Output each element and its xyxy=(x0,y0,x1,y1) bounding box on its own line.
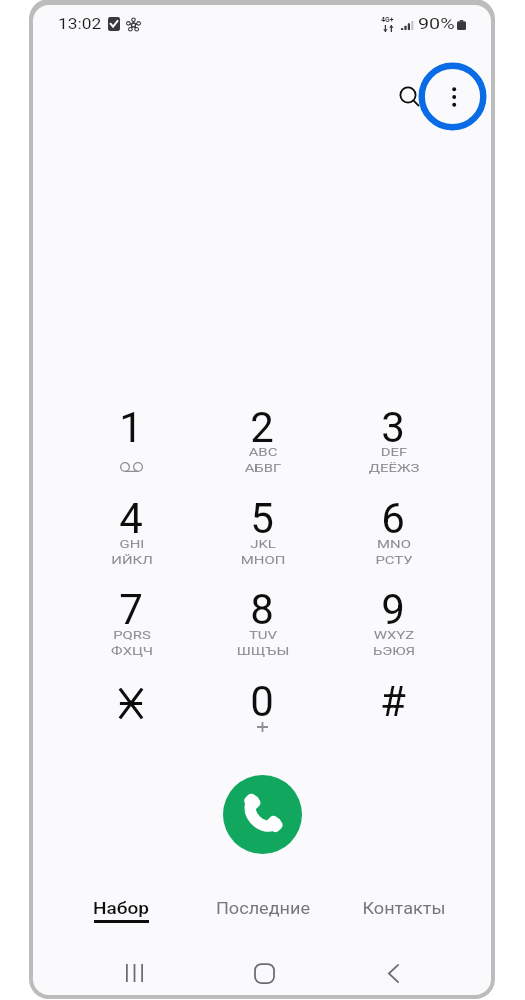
staticText: # xyxy=(338,677,448,726)
staticText: 0 xyxy=(207,677,317,726)
button[interactable]: Home xyxy=(224,953,304,993)
staticText: 4 xyxy=(76,494,186,543)
staticText: ЬЭЮЯ xyxy=(295,645,491,657)
staticText: 8 xyxy=(207,585,317,634)
staticText: Контакты xyxy=(302,899,491,918)
staticText: 7 xyxy=(76,585,186,634)
staticText: 5 xyxy=(207,494,317,543)
button[interactable] xyxy=(51,887,191,929)
button[interactable]: Search xyxy=(386,73,430,117)
staticText: ШЩЪЫ xyxy=(164,645,362,657)
button[interactable] xyxy=(76,577,186,668)
button[interactable] xyxy=(76,669,186,760)
button[interactable]: More options xyxy=(412,56,491,137)
button[interactable]: Back xyxy=(353,953,433,993)
staticText: WXYZ xyxy=(295,629,491,641)
staticText: JKL xyxy=(164,538,362,550)
staticText: ИЙКЛ xyxy=(33,554,231,566)
staticText: ДЕЁЖЗ xyxy=(295,462,491,474)
staticText: ФХЦЧ xyxy=(33,645,231,657)
staticText: 2 xyxy=(207,403,317,452)
button[interactable]: Call xyxy=(223,775,302,854)
staticText: АБВГ xyxy=(164,462,362,474)
staticText: MNO xyxy=(295,538,491,550)
staticText: TUV xyxy=(164,629,362,641)
button[interactable] xyxy=(76,486,186,577)
staticText: Набор xyxy=(33,899,228,918)
staticText: 3 xyxy=(338,403,448,452)
button[interactable] xyxy=(338,669,448,760)
button[interactable] xyxy=(76,395,186,486)
button[interactable] xyxy=(207,395,317,486)
staticText: РСТУ xyxy=(295,554,491,566)
staticText: 4G+ xyxy=(381,16,394,24)
button[interactable] xyxy=(207,669,317,760)
button[interactable] xyxy=(334,887,474,929)
staticText: PQRS xyxy=(33,629,231,641)
staticText: 1 xyxy=(76,403,186,452)
button[interactable] xyxy=(338,395,448,486)
button[interactable] xyxy=(207,486,317,577)
button[interactable] xyxy=(338,486,448,577)
staticText: 13:02 xyxy=(58,15,102,33)
staticText: МНОП xyxy=(164,554,362,566)
button[interactable] xyxy=(207,577,317,668)
staticText: 6 xyxy=(338,494,448,543)
staticText: 9 xyxy=(338,585,448,634)
button[interactable]: Recent apps xyxy=(94,953,174,993)
staticText: GHI xyxy=(33,538,231,550)
button[interactable] xyxy=(193,887,333,929)
staticText: 90% xyxy=(418,16,455,33)
staticText: DEF xyxy=(295,446,491,458)
staticText: ABC xyxy=(164,446,362,458)
button[interactable] xyxy=(338,577,448,668)
staticText: Последние xyxy=(161,899,365,918)
